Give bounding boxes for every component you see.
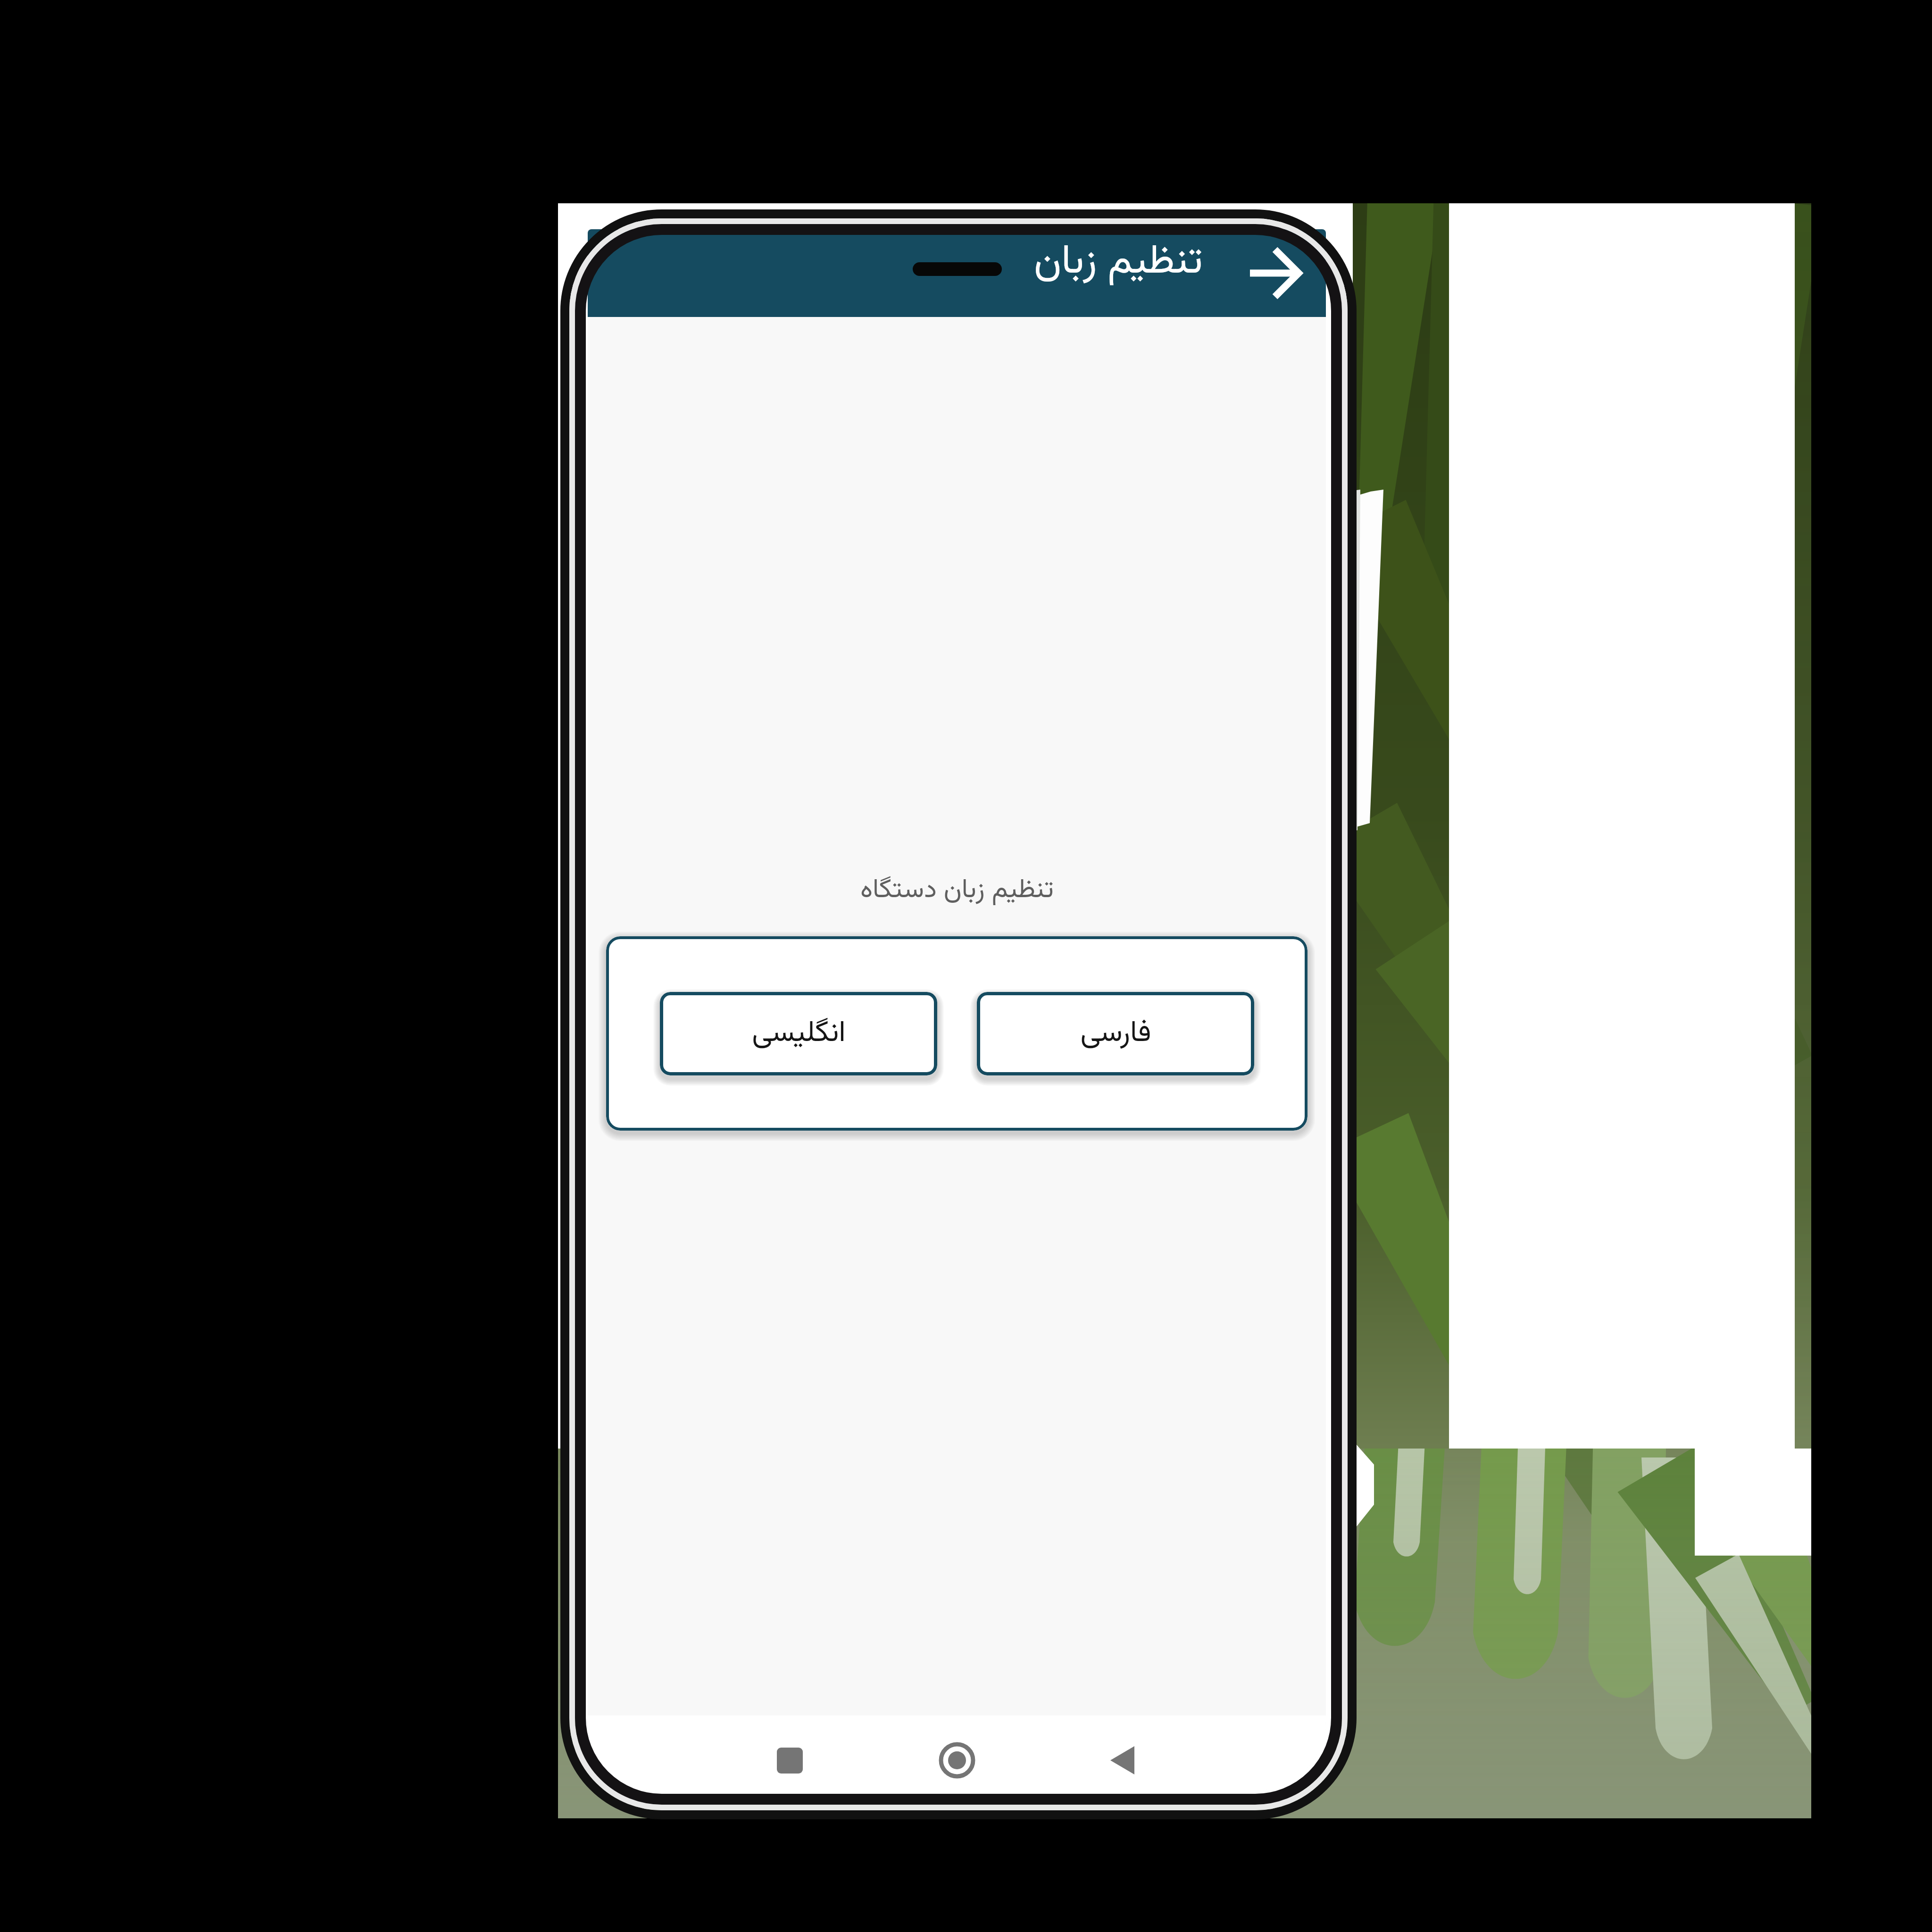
staticText: تنظیم زبان دستگاه	[860, 870, 1054, 912]
button[interactable]: Home	[924, 1727, 990, 1791]
button[interactable]: Recents	[757, 1728, 823, 1791]
button[interactable]: فارسی	[977, 992, 1254, 1075]
button[interactable]: Back	[1246, 236, 1302, 310]
staticText: فارسی	[1080, 1011, 1151, 1057]
staticText: انگلیسی	[752, 1011, 846, 1057]
button[interactable]: Back	[1089, 1727, 1155, 1791]
button[interactable]: انگلیسی	[660, 992, 937, 1075]
staticText: تنظیم زبان	[1034, 231, 1203, 294]
